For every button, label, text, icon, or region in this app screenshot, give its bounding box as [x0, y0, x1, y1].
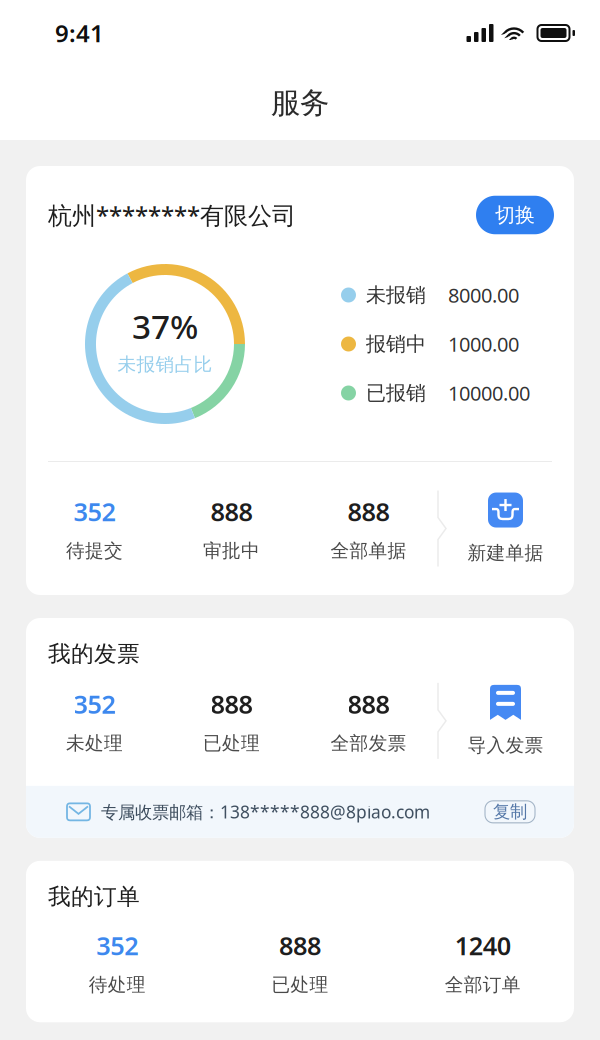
staticText: 我的订单	[48, 883, 140, 911]
staticText: 10000.00	[448, 380, 530, 406]
button[interactable]: 888	[300, 495, 437, 562]
staticText: 待提交	[66, 539, 123, 562]
staticText: 我的发票	[48, 640, 140, 668]
staticText: 待处理	[89, 973, 146, 996]
staticText: 导入发票	[467, 734, 543, 757]
staticText: 服务	[271, 85, 329, 121]
button[interactable]: 888	[163, 495, 300, 562]
staticText: 切换	[495, 203, 535, 227]
staticText: 37%	[132, 304, 198, 348]
staticText: 888	[210, 495, 252, 528]
staticText: 888	[347, 687, 389, 721]
staticText: 报销中	[366, 332, 426, 356]
button[interactable]: 352	[26, 495, 163, 562]
button[interactable]: 888	[300, 687, 437, 755]
button[interactable]: 新建单据	[437, 492, 574, 564]
staticText: 1240	[455, 929, 511, 962]
staticText: 352	[96, 929, 138, 962]
staticText: 已报销	[366, 381, 426, 405]
button[interactable]: 复制	[485, 801, 535, 823]
button[interactable]: 导入发票	[437, 685, 574, 757]
staticText: 未报销占比	[117, 353, 212, 376]
staticText: 8000.00	[448, 282, 519, 308]
button[interactable]: 352	[26, 929, 209, 996]
staticText: 352	[73, 495, 115, 528]
button[interactable]: 888	[209, 929, 391, 996]
staticText: 专属收票邮箱：138*****888@8piao.com	[101, 800, 430, 823]
staticText: 1000.00	[448, 331, 519, 357]
button[interactable]: 352	[26, 687, 163, 755]
staticText: 审批中	[203, 539, 260, 562]
staticText: 杭州********有限公司	[48, 199, 296, 231]
staticText: 888	[210, 687, 252, 721]
staticText: 未处理	[66, 732, 123, 755]
staticText: 未报销	[366, 283, 426, 307]
staticText: 已处理	[271, 973, 328, 996]
staticText: 888	[347, 495, 389, 528]
staticText: 新建单据	[467, 541, 543, 564]
staticText: 全部订单	[445, 973, 521, 996]
staticText: 复制	[493, 801, 527, 822]
button[interactable]: 1240	[391, 929, 574, 996]
staticText: 全部单据	[330, 539, 406, 562]
staticText: 888	[279, 929, 321, 962]
button[interactable]: 切换	[476, 196, 554, 234]
staticText: 9:41	[55, 17, 104, 49]
staticText: 全部发票	[330, 732, 406, 755]
button[interactable]: 888	[163, 687, 300, 755]
staticText: 已处理	[203, 732, 260, 755]
staticText: 352	[73, 687, 115, 721]
